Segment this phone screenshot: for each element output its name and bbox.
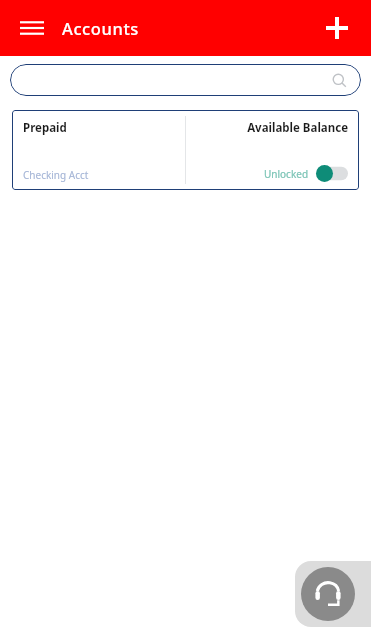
button[interactable]: Add account — [315, 6, 359, 50]
staticText: Prepaid — [23, 120, 67, 136]
staticText: Unlocked — [264, 167, 309, 181]
button[interactable]: Lock account toggle — [316, 165, 348, 182]
button[interactable]: Contact support — [301, 567, 355, 621]
button[interactable]: Search accounts — [10, 64, 361, 96]
staticText: Accounts — [62, 17, 139, 39]
button[interactable]: Open navigation menu — [12, 8, 52, 48]
staticText: Available Balance — [247, 120, 348, 136]
button[interactable]: Prepaid — [12, 110, 359, 190]
staticText: Checking Acct — [23, 168, 89, 182]
